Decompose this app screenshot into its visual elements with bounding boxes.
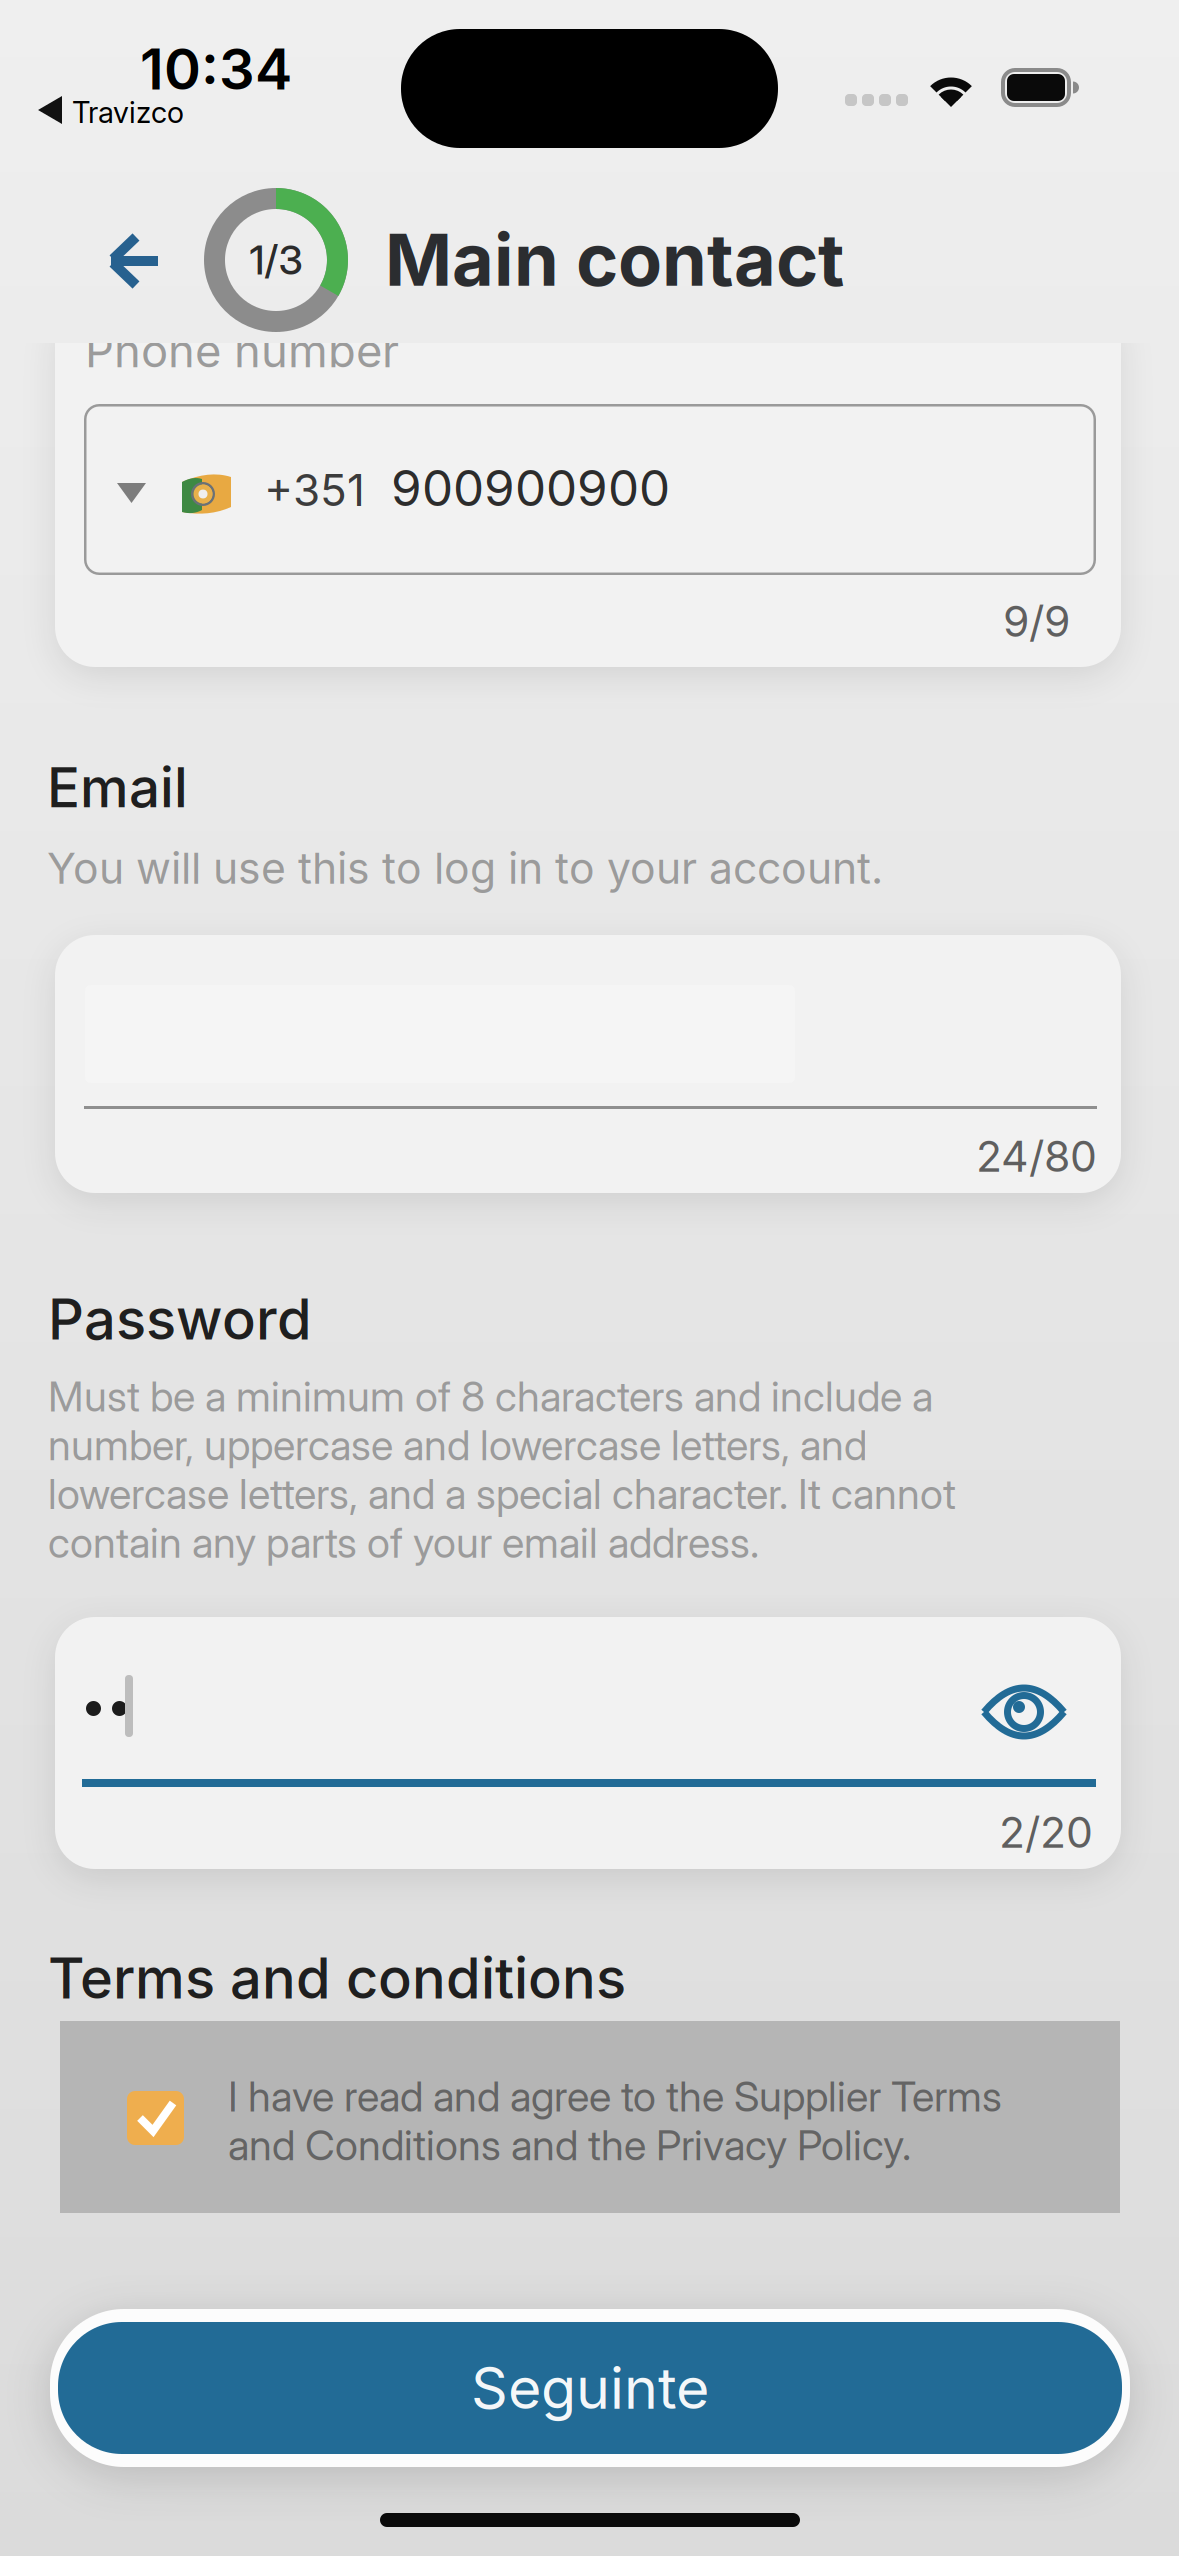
staticText: Travizco <box>72 95 184 130</box>
staticText: 1/3 <box>249 236 302 284</box>
staticText: +351 <box>264 464 365 516</box>
button[interactable] <box>93 222 173 302</box>
button[interactable] <box>982 1678 1066 1746</box>
staticText: 900900900 <box>391 459 670 517</box>
button[interactable]: 2/20 <box>55 1617 1121 1869</box>
staticText: 9/9 <box>1003 596 1070 646</box>
staticText: I have read and agree to the Supplier Te… <box>228 2072 1002 2169</box>
staticText: Terms and conditions <box>48 1945 626 2011</box>
button[interactable]: +351 <box>84 404 1096 575</box>
button[interactable]: 24/80 <box>55 935 1121 1193</box>
staticText: Seguinte <box>471 2354 709 2422</box>
staticText: You will use this to log in to your acco… <box>47 843 883 893</box>
staticText: Phone number <box>85 324 399 377</box>
staticText: 10:34 <box>140 36 292 102</box>
button[interactable]: I have read and agree to the Supplier Te… <box>60 2021 1120 2213</box>
button[interactable]: Seguinte <box>50 2309 1130 2467</box>
staticText: 24/80 <box>976 1131 1097 1181</box>
staticText: Password <box>48 1286 312 1352</box>
staticText: Must be a minimum of 8 characters and in… <box>48 1372 956 1567</box>
staticText: Email <box>47 755 188 819</box>
staticText: 2/20 <box>999 1807 1093 1857</box>
staticText: Main contact <box>385 217 844 302</box>
